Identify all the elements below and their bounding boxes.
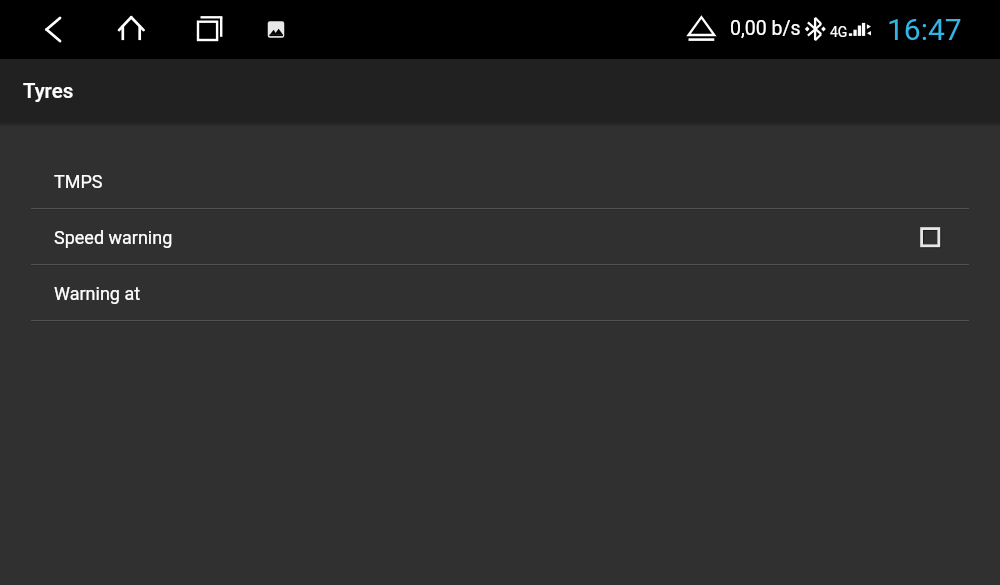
- staticText: Tyres: [23, 79, 74, 103]
- staticText: Speed warning: [54, 227, 173, 248]
- staticText: 0,00 b/s: [730, 17, 801, 40]
- button[interactable]: Speed warning: [0, 210, 1000, 264]
- staticText: TMPS: [54, 171, 103, 192]
- button[interactable]: Recent apps: [184, 0, 232, 59]
- staticText: Warning at: [54, 283, 141, 304]
- button[interactable]: Screenshot: [252, 0, 300, 59]
- button[interactable]: Back: [29, 0, 77, 59]
- button[interactable]: Home: [107, 0, 155, 59]
- button[interactable]: TMPS: [0, 154, 1000, 208]
- staticText: 4G: [830, 24, 848, 40]
- staticText: 16:47: [887, 12, 962, 47]
- button[interactable]: Warning at: [0, 266, 1000, 320]
